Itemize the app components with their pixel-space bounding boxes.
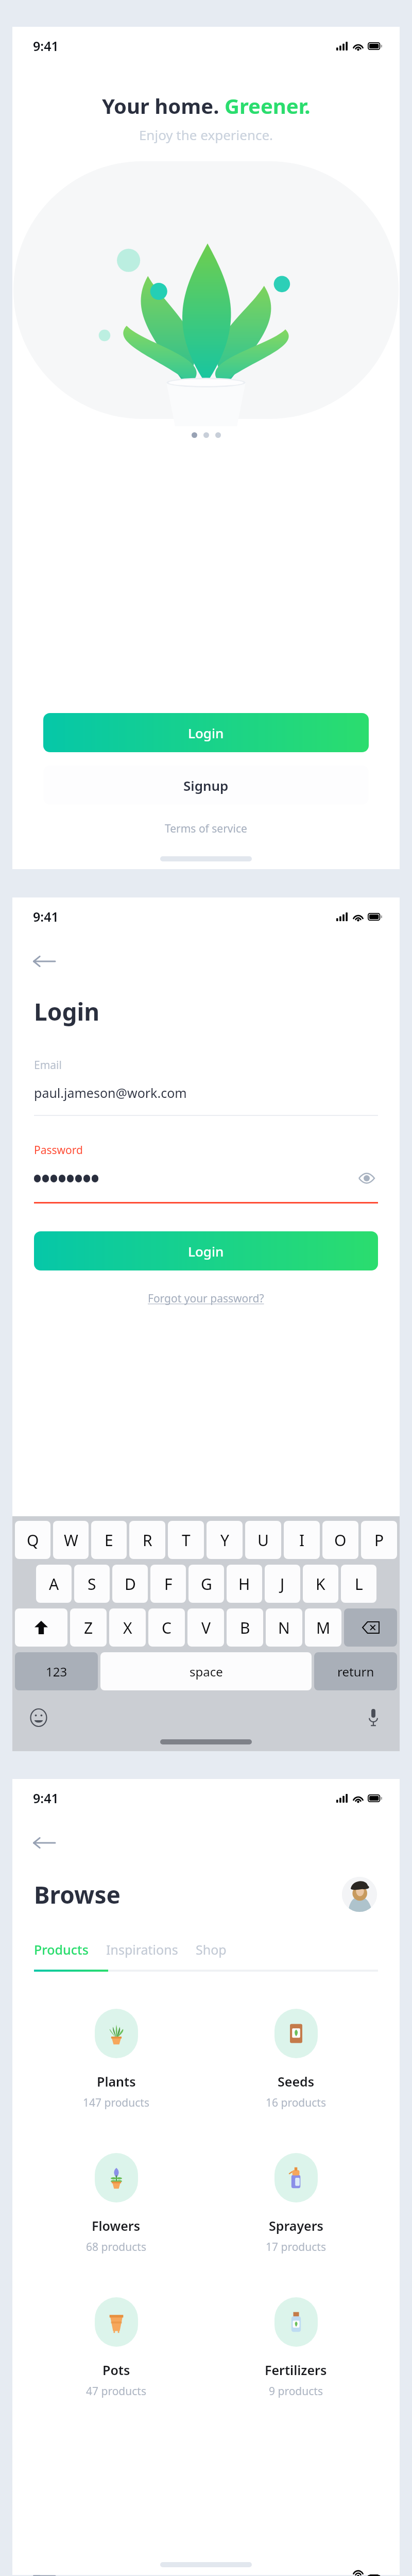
staticText: Login	[188, 1242, 224, 1260]
button[interactable]: Dictation	[362, 1706, 385, 1730]
button[interactable]: Shift	[15, 1608, 67, 1647]
button[interactable]: Emoji	[27, 1706, 50, 1730]
staticText: Login	[188, 724, 224, 742]
button[interactable]: P	[361, 1521, 397, 1559]
button[interactable]: V	[187, 1608, 224, 1647]
button[interactable]: M	[305, 1608, 341, 1647]
button[interactable]: Inspirations	[106, 1941, 196, 1958]
staticText: X	[123, 1617, 132, 1638]
staticText: Plants	[97, 2073, 136, 2090]
staticText: Fertilizers	[265, 2361, 327, 2379]
button[interactable]: Plants	[32, 1989, 200, 2121]
button[interactable]: A	[36, 1565, 72, 1603]
staticText: O	[334, 1530, 347, 1551]
staticText: Y	[220, 1530, 229, 1551]
staticText: 47 products	[86, 2384, 146, 2399]
button[interactable]: T	[168, 1521, 204, 1559]
button[interactable]: Back	[32, 1831, 70, 1855]
staticText: Your home.	[102, 92, 225, 120]
staticText: paul.jameson@work.com	[34, 1084, 187, 1101]
staticText: 123	[46, 1663, 67, 1680]
button[interactable]: O	[322, 1521, 358, 1559]
button[interactable]: Forgot your password?	[144, 1287, 268, 1310]
staticText: return	[337, 1663, 374, 1680]
button[interactable]: S	[74, 1565, 110, 1603]
staticText: 16 products	[266, 2095, 326, 2110]
button[interactable]: J	[265, 1565, 300, 1603]
staticText: H	[238, 1573, 250, 1595]
staticText: J	[280, 1573, 285, 1595]
button[interactable]: Sprayers	[212, 2133, 380, 2265]
button[interactable]: G	[188, 1565, 224, 1603]
staticText: 9 products	[269, 2384, 323, 2399]
button[interactable]: D	[112, 1565, 148, 1603]
button[interactable]: Q	[15, 1521, 50, 1559]
button[interactable]: W	[53, 1521, 89, 1559]
button[interactable]: U	[245, 1521, 281, 1559]
staticText: Sprayers	[269, 2217, 323, 2234]
staticText: D	[125, 1573, 136, 1595]
button[interactable]: B	[227, 1608, 263, 1647]
button[interactable]: Show password	[355, 1167, 378, 1190]
button[interactable]: Delete	[344, 1608, 397, 1647]
staticText: Password	[34, 1143, 83, 1158]
button[interactable]: Seeds	[212, 1989, 380, 2121]
button[interactable]: C	[148, 1608, 185, 1647]
button[interactable]: Login	[43, 713, 369, 752]
staticText: F	[164, 1573, 173, 1595]
button[interactable]: Profile	[342, 1877, 377, 1912]
staticText: L	[355, 1573, 363, 1595]
staticText: 17 products	[266, 2240, 326, 2255]
staticText: C	[162, 1617, 171, 1638]
button[interactable]: Products	[34, 1941, 106, 1958]
staticText: S	[88, 1573, 96, 1595]
button[interactable]: K	[303, 1565, 338, 1603]
button[interactable]: F	[150, 1565, 186, 1603]
staticText: P	[374, 1530, 384, 1551]
staticText: N	[278, 1617, 290, 1638]
staticText: 9:41	[33, 1789, 59, 1807]
button[interactable]: L	[341, 1565, 376, 1603]
staticText: W	[64, 1530, 78, 1551]
button[interactable]: R	[129, 1521, 165, 1559]
staticText: Enjoy the experience.	[12, 126, 400, 144]
staticText: E	[105, 1530, 113, 1551]
button[interactable]: 123	[15, 1652, 98, 1690]
button[interactable]: X	[109, 1608, 146, 1647]
button[interactable]: Y	[207, 1521, 243, 1559]
button[interactable]: Fertilizers	[212, 2278, 380, 2410]
staticText: Greener.	[225, 92, 311, 120]
staticText: Email	[34, 1058, 62, 1073]
staticText: R	[143, 1530, 152, 1551]
staticText: Terms of service	[165, 821, 247, 836]
staticText: U	[257, 1530, 269, 1551]
button[interactable]: H	[227, 1565, 262, 1603]
button[interactable]: Flowers	[32, 2133, 200, 2265]
button[interactable]: return	[314, 1652, 397, 1690]
staticText: 147 products	[83, 2095, 149, 2110]
staticText: Z	[84, 1617, 93, 1638]
button[interactable]: space	[100, 1652, 312, 1690]
button[interactable]: Back	[32, 949, 70, 974]
button[interactable]: Terms of service	[160, 816, 252, 841]
button[interactable]: Shop	[196, 1941, 244, 1958]
staticText: Products	[34, 1941, 89, 1958]
staticText: Browse	[34, 1878, 121, 1911]
button[interactable]: Z	[70, 1608, 107, 1647]
button[interactable]: Signup	[43, 766, 369, 805]
staticText: M	[316, 1617, 331, 1638]
staticText: Signup	[183, 776, 229, 794]
staticText: Login	[34, 995, 100, 1028]
staticText: 68 products	[86, 2240, 146, 2255]
button[interactable]: Login	[34, 1231, 378, 1270]
staticText: Flowers	[92, 2217, 141, 2234]
staticText: V	[201, 1617, 211, 1638]
staticText: 9:41	[33, 37, 59, 55]
button[interactable]: Pots	[32, 2278, 200, 2410]
staticText: Q	[27, 1530, 39, 1551]
staticText: G	[201, 1573, 212, 1595]
staticText: T	[182, 1530, 191, 1551]
button[interactable]: N	[266, 1608, 302, 1647]
button[interactable]: I	[284, 1521, 320, 1559]
button[interactable]: E	[91, 1521, 127, 1559]
